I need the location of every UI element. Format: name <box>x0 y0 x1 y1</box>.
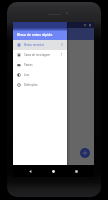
button[interactable]: Pastas <box>13 60 67 70</box>
button[interactable]: Home <box>48 166 59 177</box>
button[interactable]: Caixa de reciclagem <box>13 50 67 60</box>
button[interactable]: New note <box>80 148 90 158</box>
staticText: Notas recentes <box>24 43 45 47</box>
staticText: Lixo <box>24 73 30 77</box>
button[interactable]: Notas recentes <box>13 40 67 50</box>
staticText: 3 <box>61 43 63 47</box>
button[interactable]: Definições <box>13 80 67 90</box>
staticText: Pastas <box>24 63 33 67</box>
staticText: Definições <box>24 83 38 87</box>
button[interactable]: Lixo <box>13 70 67 80</box>
staticText: Bloco de notas rápido <box>17 32 53 37</box>
staticText: Caixa de reciclagem <box>24 53 51 57</box>
button[interactable]: Back <box>25 166 36 177</box>
staticText: 1 <box>61 53 63 57</box>
button[interactable]: Recent apps <box>71 166 82 177</box>
